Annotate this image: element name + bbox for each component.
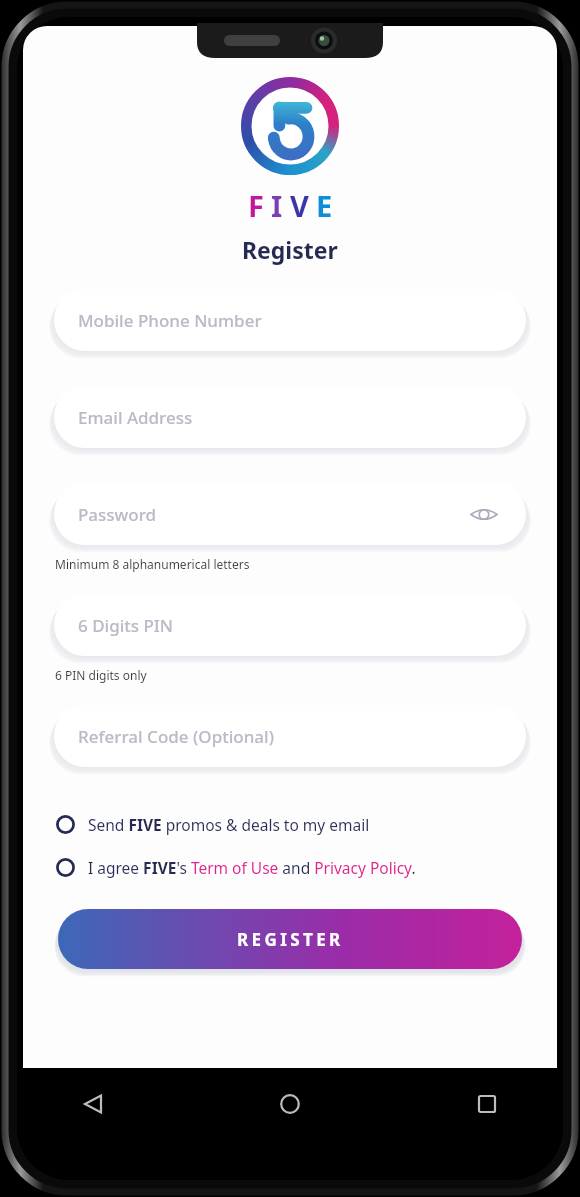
- button[interactable]: Home: [267, 1081, 313, 1127]
- staticText: V: [290, 186, 309, 225]
- staticText: 6 PIN digits only: [55, 667, 147, 683]
- button[interactable]: Recent apps: [464, 1081, 510, 1127]
- button[interactable]: Send FIVE promos & deals to my email: [54, 813, 526, 835]
- staticText: Register: [242, 234, 338, 265]
- staticText: 6 Digits PIN: [78, 614, 174, 637]
- staticText: Password: [78, 503, 157, 526]
- button[interactable]: I agree FIVE's Term of Use and Privacy P…: [54, 856, 526, 878]
- staticText: F: [248, 186, 264, 225]
- staticText: Minimum 8 alphanumerical letters: [55, 556, 250, 572]
- staticText: Email Address: [78, 406, 193, 429]
- button[interactable]: Show password: [466, 496, 502, 532]
- button[interactable]: Mobile Phone Number: [54, 289, 526, 351]
- button[interactable]: 6 Digits PIN: [54, 594, 526, 656]
- staticText: E: [316, 186, 333, 225]
- staticText: Mobile Phone Number: [78, 309, 262, 332]
- button[interactable]: Email Address: [54, 386, 526, 448]
- button[interactable]: REGISTER: [58, 909, 522, 969]
- staticText: Send FIVE promos & deals to my email: [88, 814, 370, 835]
- button[interactable]: Back: [70, 1081, 116, 1127]
- staticText: I agree FIVE's Term of Use and Privacy P…: [88, 857, 416, 878]
- staticText: Referral Code (Optional): [78, 725, 274, 748]
- button[interactable]: Password: [54, 483, 526, 545]
- staticText: REGISTER: [237, 928, 344, 951]
- staticText: I: [271, 186, 283, 225]
- button[interactable]: Referral Code (Optional): [54, 705, 526, 767]
